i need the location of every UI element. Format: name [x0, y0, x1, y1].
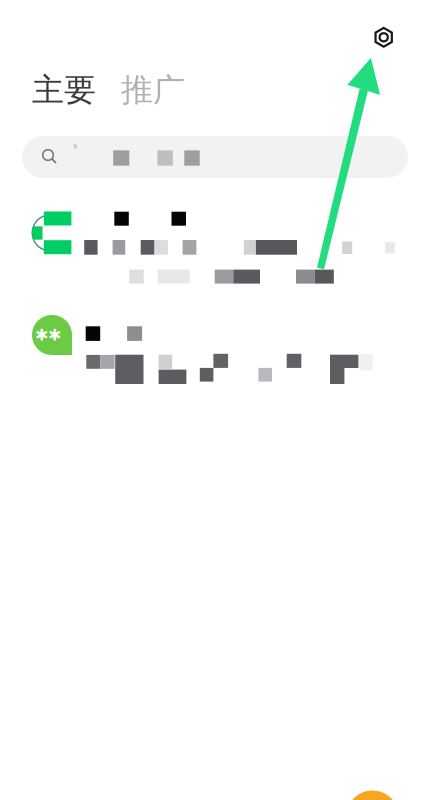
- staticText: 推广: [121, 70, 185, 110]
- button[interactable]: Settings: [364, 17, 404, 57]
- button[interactable]: [0, 196, 430, 296]
- button[interactable]: [22, 136, 408, 178]
- button[interactable]: Compose: [346, 790, 399, 800]
- staticText: ✱✱: [35, 326, 61, 344]
- button[interactable]: ✱✱: [0, 306, 430, 390]
- button[interactable]: 主要: [32, 70, 112, 110]
- button[interactable]: 推广: [121, 70, 201, 110]
- staticText: 主要: [32, 70, 96, 110]
